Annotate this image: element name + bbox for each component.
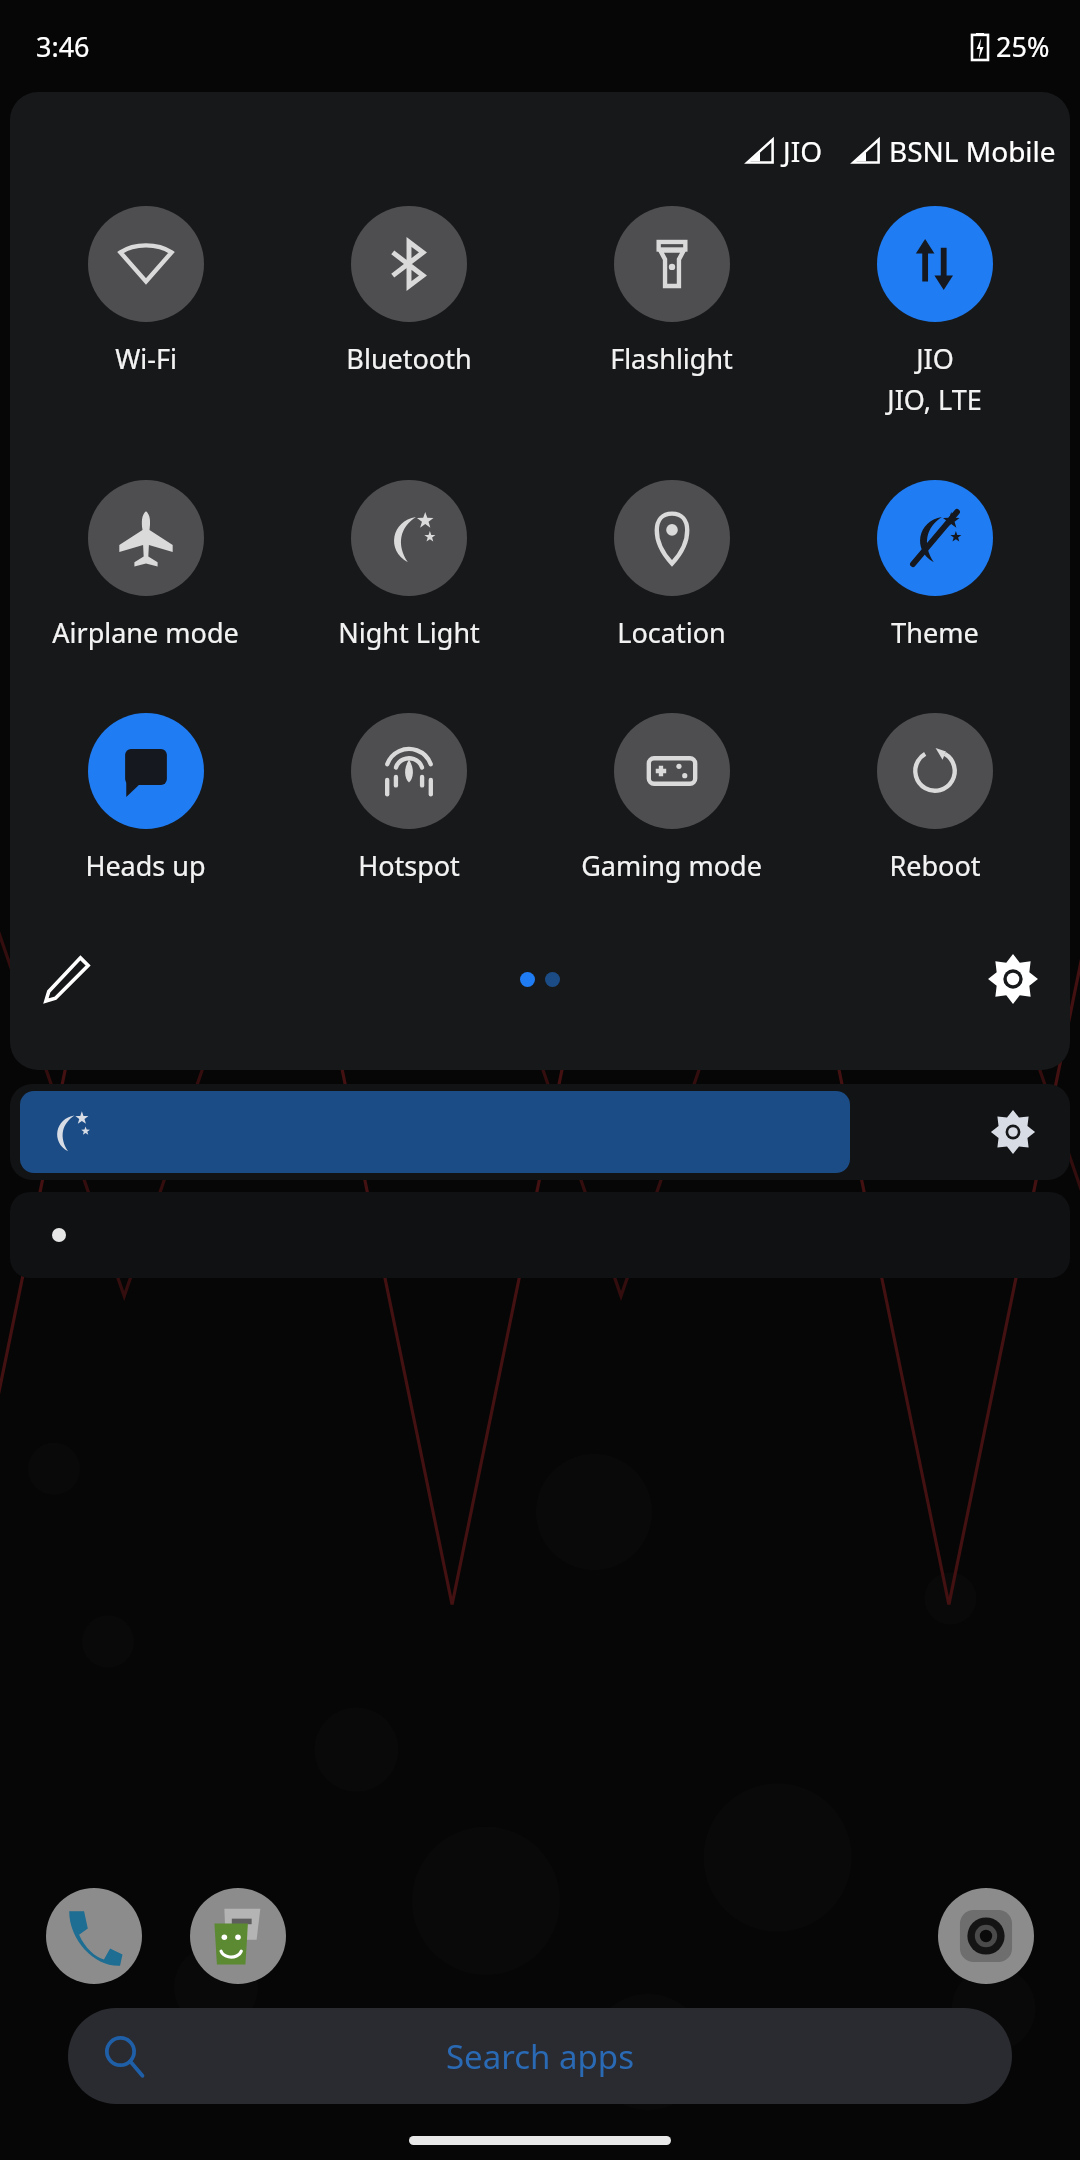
button[interactable]: Theme xyxy=(803,480,1066,651)
button[interactable]: Bluetooth xyxy=(277,206,540,377)
button[interactable]: Gaming mode xyxy=(540,713,803,884)
staticText: Bluetooth xyxy=(346,340,472,377)
button[interactable]: Brightness xyxy=(20,1091,850,1173)
button[interactable] xyxy=(10,1192,1070,1278)
staticText: 3:46 xyxy=(36,28,90,65)
button[interactable]: Flashlight xyxy=(540,206,803,377)
button[interactable]: Settings xyxy=(982,948,1044,1010)
button[interactable]: Search apps xyxy=(68,2008,1012,2104)
staticText: Reboot xyxy=(889,847,981,884)
button[interactable]: Edit tiles xyxy=(36,948,98,1010)
staticText: Search apps xyxy=(446,2034,634,2079)
staticText: Theme xyxy=(891,614,979,651)
staticText: Location xyxy=(617,614,726,651)
staticText: Wi-Fi xyxy=(115,340,177,377)
staticText: Airplane mode xyxy=(52,614,239,651)
button[interactable]: Hotspot xyxy=(277,713,540,884)
staticText: Flashlight xyxy=(610,340,733,377)
button[interactable]: Airplane mode xyxy=(14,480,277,651)
button[interactable]: Location xyxy=(540,480,803,651)
staticText: Night Light xyxy=(338,614,480,651)
button[interactable]: Reboot xyxy=(803,713,1066,884)
button[interactable]: Heads up xyxy=(14,713,277,884)
staticText: Heads up xyxy=(85,847,206,884)
staticText: JIO, LTE xyxy=(887,381,982,418)
button[interactable]: Brightness settings xyxy=(984,1103,1042,1161)
staticText: 25% xyxy=(996,28,1050,65)
button[interactable]: Play Store xyxy=(190,1888,286,1984)
staticText: Hotspot xyxy=(358,847,460,884)
staticText: Gaming mode xyxy=(581,847,762,884)
button[interactable]: Wi-Fi xyxy=(14,206,277,377)
button[interactable]: Phone xyxy=(46,1888,142,1984)
staticText: BSNL Mobile xyxy=(889,132,1056,170)
staticText: JIO xyxy=(916,340,954,377)
button[interactable]: JIO xyxy=(803,206,1066,418)
button[interactable]: Camera xyxy=(938,1888,1034,1984)
staticText: JIO xyxy=(783,132,823,170)
button[interactable]: Night Light xyxy=(277,480,540,651)
